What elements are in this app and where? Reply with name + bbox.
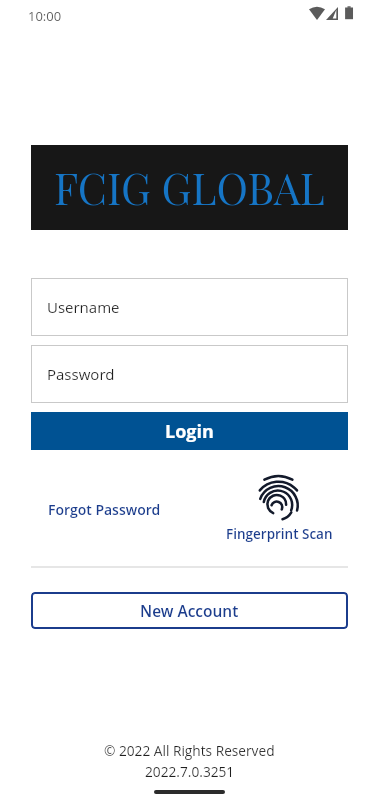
button[interactable]: Fingerprint Scan: [218, 474, 340, 543]
button[interactable]: Username: [31, 278, 348, 336]
staticText: Username: [47, 297, 120, 317]
staticText: Login: [165, 419, 214, 444]
staticText: Password: [47, 364, 115, 384]
button[interactable]: Password: [31, 345, 348, 403]
staticText: FCIG GLOBAL: [54, 159, 325, 216]
button[interactable]: Forgot Password: [40, 494, 169, 525]
button[interactable]: Login: [31, 412, 348, 450]
button[interactable]: New Account: [31, 592, 348, 629]
staticText: Forgot Password: [48, 500, 161, 519]
staticText: New Account: [140, 600, 239, 621]
other: Fingerprint Scan: [253, 474, 306, 522]
staticText: Fingerprint Scan: [226, 525, 333, 543]
staticText: © 2022 All Rights Reserved: [104, 741, 275, 760]
staticText: 10:00: [28, 7, 62, 25]
staticText: 2022.7.0.3251: [145, 762, 235, 781]
